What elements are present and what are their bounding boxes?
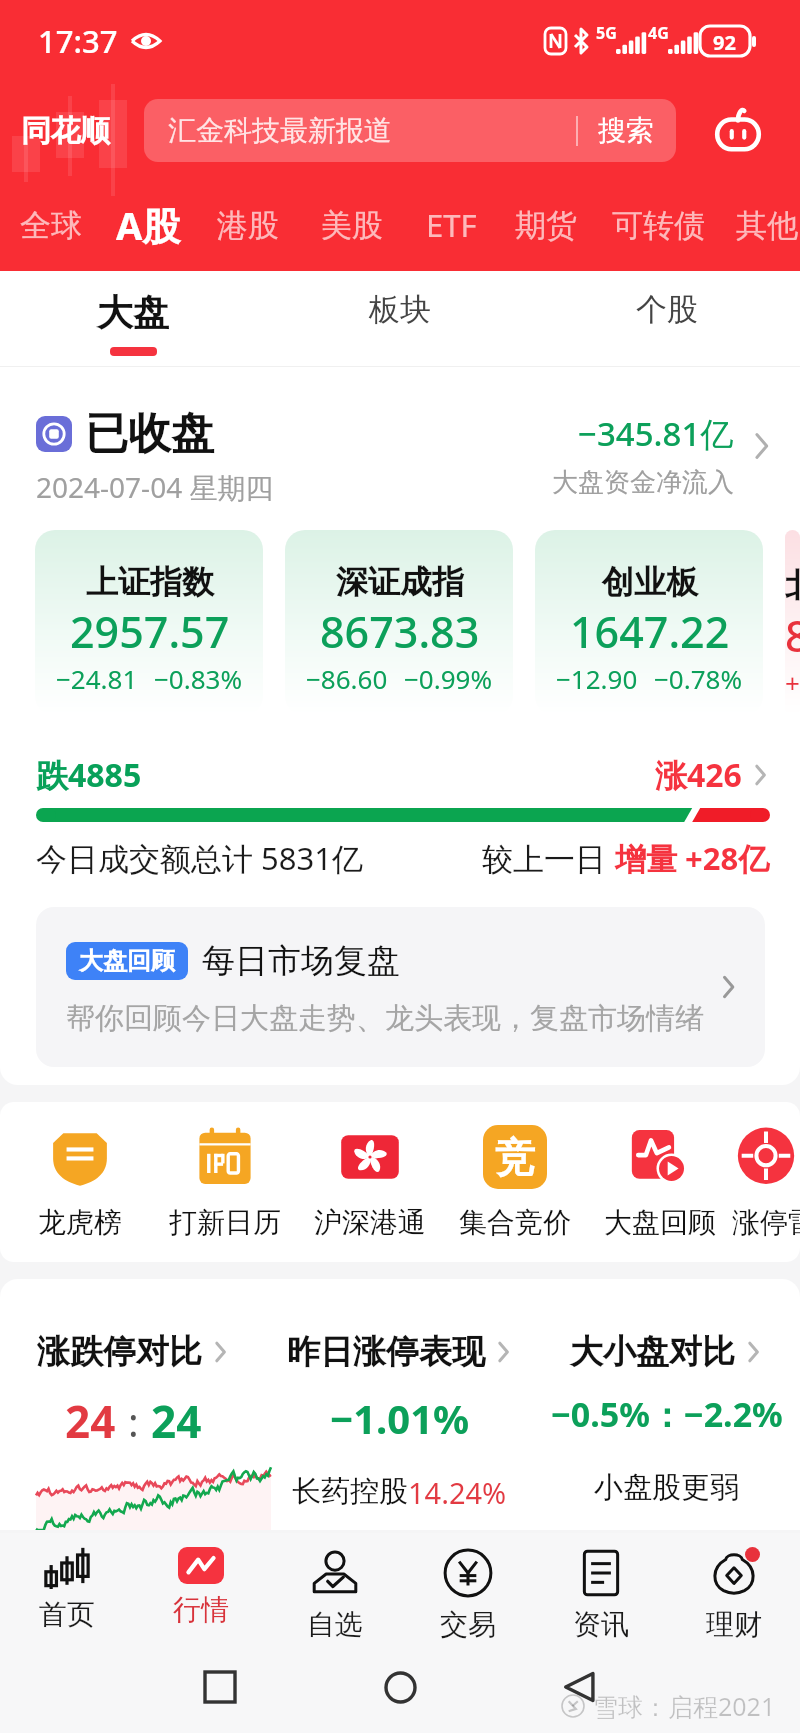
button[interactable]: 北证50 [785,530,800,715]
staticText: 沪深港通 [314,1205,426,1240]
button[interactable]: 交易 [401,1533,534,1641]
staticText: 可转债 [612,206,705,245]
staticText: 2957.57 [70,602,230,661]
staticText: 大盘回顾 [79,946,175,976]
staticText: 跌4885 [36,753,142,797]
staticText: −0.78% [654,661,743,696]
button[interactable]: 打新日历 [152,1125,297,1240]
staticText: 17:37 [38,20,118,62]
button[interactable]: 可转债 [610,186,706,264]
button[interactable]: 沪深港通 [297,1125,442,1240]
staticText: 竞 [495,1132,535,1182]
staticText: 每日市场复盘 [202,940,400,982]
staticText: 北证50 [785,562,800,606]
staticText: 打新日历 [169,1205,281,1240]
staticText: −1.01% [330,1391,470,1445]
staticText: 汇金科技最新报道 [168,113,392,148]
staticText: ETF [426,204,477,246]
staticText: 14.24% [408,1473,507,1512]
button[interactable]: 理财 [667,1533,800,1641]
staticText: −0.5%：−2.2% [551,1391,783,1437]
staticText: 24 [65,1391,116,1451]
button[interactable]: 汇金科技最新报道 [144,99,676,162]
button[interactable]: 大盘 [0,271,266,367]
staticText: 资讯 [573,1607,629,1641]
staticText: 雪球：启程2021 [593,1689,776,1723]
staticText: 板块 [369,290,431,329]
staticText: −12.90 [556,661,638,696]
staticText: 大小盘对比 [570,1331,735,1373]
button[interactable]: Recents [190,1657,250,1717]
button[interactable]: 涨跌停对比 [0,1279,266,1530]
button[interactable]: 个股 [533,271,800,367]
staticText: 帮你回顾今日大盘走势、龙头表现，复盘市场情绪 [66,1000,704,1037]
staticText: 深证成指 [336,562,464,602]
staticText: 行情 [173,1592,229,1627]
button[interactable]: 大小盘对比 [533,1279,800,1530]
button[interactable]: 已收盘 [36,407,774,506]
button[interactable]: 创业板 [535,530,763,715]
button[interactable]: 全球 [19,186,83,264]
button[interactable]: 竞 [442,1125,587,1240]
staticText: 涨停雷达 [732,1205,800,1240]
staticText: −24.81 [56,661,138,696]
staticText: 自选 [307,1607,363,1641]
button[interactable]: Home [370,1657,430,1717]
staticText: 其他 [736,206,798,245]
button[interactable]: 行情 [134,1533,268,1641]
button[interactable]: 深证成指 [285,530,513,715]
button[interactable]: A股 [108,186,188,264]
staticText: 创业板 [602,562,698,602]
button[interactable]: 上证指数 [35,530,263,715]
staticText: +5.12 [785,665,800,700]
button[interactable]: 期货 [514,186,578,264]
button[interactable]: 昨日涨停表现 [266,1279,533,1530]
staticText: 全球 [20,206,82,245]
button[interactable]: 龙虎榜 [7,1125,152,1240]
staticText: 大盘 [97,290,169,335]
button[interactable]: 其他 [735,186,799,264]
staticText: 涨426 [655,753,742,797]
staticText: 个股 [636,290,698,329]
staticText: 港股 [217,206,279,245]
staticText: 搜索 [598,113,654,148]
staticText: : [128,1394,139,1448]
button[interactable]: 美股 [320,186,384,264]
staticText: 涨跌停对比 [37,1331,202,1373]
button[interactable]: 首页 [0,1533,134,1641]
staticText: 较上一日 [482,837,615,879]
staticText: 上证指数 [86,562,214,602]
button[interactable]: 板块 [266,271,533,367]
staticText: 5G [596,22,617,44]
staticText: 8673.83 [320,602,480,661]
staticText: 今日成交额总计 5831亿 [36,837,363,879]
staticText: 交易 [440,1607,496,1641]
button[interactable]: 自选 [268,1533,401,1641]
staticText: 龙虎榜 [38,1205,122,1240]
staticText: 2024-07-04 星期四 [36,468,274,506]
staticText: 1647.22 [570,602,730,661]
button[interactable]: 跌4885 [36,753,770,879]
staticText: 800.66 [785,606,800,665]
button[interactable]: 大盘回顾 [36,907,765,1067]
button[interactable]: 同花顺 [8,105,122,157]
staticText: −345.81亿 [578,411,734,456]
staticText: 美股 [321,206,383,245]
button[interactable]: 港股 [216,186,280,264]
button[interactable]: AI assistant [700,96,776,166]
staticText: 同花顺 [21,112,110,150]
staticText: A股 [116,199,181,251]
staticText: 集合竞价 [459,1205,571,1240]
staticText: 92 [713,29,736,56]
staticText: −0.99% [404,661,493,696]
button[interactable]: 大盘回顾 [587,1125,732,1240]
staticText: 昨日涨停表现 [287,1331,485,1373]
button[interactable]: ETF [419,186,483,264]
button[interactable]: 资讯 [534,1533,667,1641]
staticText: 首页 [39,1597,95,1632]
staticText: 24 [151,1391,202,1451]
staticText: 大盘回顾 [604,1205,716,1240]
staticText: 大盘资金净流入 [552,466,734,499]
button[interactable]: Back [550,1657,610,1717]
button[interactable]: 涨停雷达 [732,1125,800,1240]
